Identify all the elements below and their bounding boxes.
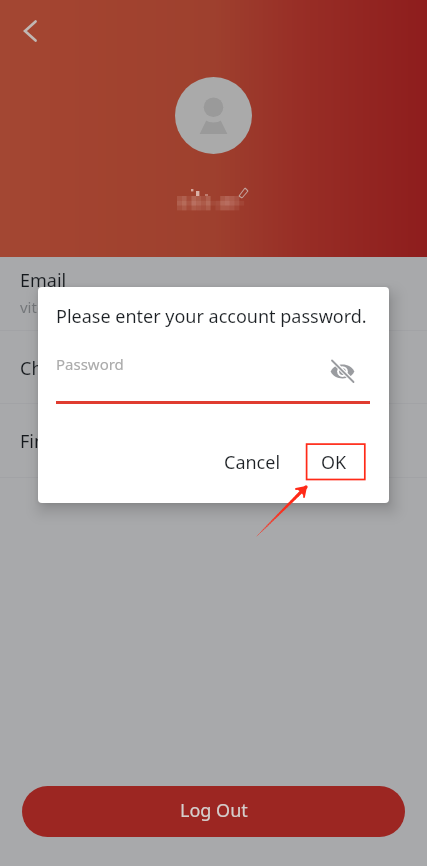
staticText: Log Out: [180, 798, 248, 823]
button[interactable]: Profile photo: [175, 77, 252, 154]
staticText: Email: [20, 268, 67, 293]
staticText: Password: [56, 354, 124, 374]
button[interactable]: Back: [9, 10, 51, 52]
button[interactable]: OK: [298, 442, 370, 482]
staticText: Fingerprint: [20, 429, 115, 454]
staticText: Please enter your account password.: [56, 304, 367, 329]
button[interactable]: Cancel: [212, 442, 293, 482]
staticText: Change password: [20, 356, 172, 381]
staticText: vitexxxxxxx@gmail.com: [20, 297, 188, 317]
button[interactable]: Fingerprint: [0, 404, 427, 477]
staticText: Cancel: [224, 450, 281, 475]
button[interactable]: Show password: [323, 352, 361, 390]
button[interactable]: Log Out: [22, 786, 405, 837]
button[interactable]: Email: [0, 257, 427, 330]
button[interactable]: Change password: [0, 331, 427, 403]
staticText: OK: [321, 450, 347, 475]
